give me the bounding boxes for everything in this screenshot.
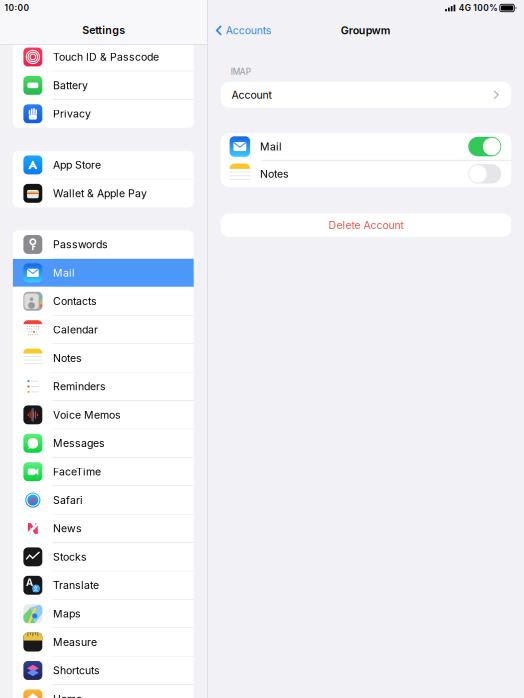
button[interactable]: Passwords: [13, 231, 194, 258]
button[interactable]: Wallet & Apple Pay: [13, 179, 194, 207]
button[interactable]: Notes enabled: [468, 164, 501, 184]
button[interactable]: Measure: [13, 628, 194, 656]
staticText: Wallet & Apple Pay: [53, 187, 147, 200]
staticText: Touch ID & Passcode: [53, 51, 159, 63]
staticText: Groupwm: [341, 24, 391, 37]
staticText: FaceTime: [53, 465, 101, 478]
button[interactable]: Accounts: [207, 19, 278, 42]
staticText: Delete Account: [328, 219, 403, 231]
button[interactable]: Contacts: [13, 287, 194, 315]
button[interactable]: FaceTime: [13, 458, 194, 486]
button[interactable]: Shortcuts: [13, 657, 194, 684]
staticText: Notes: [53, 352, 82, 364]
staticText: Mail: [260, 140, 282, 153]
staticText: App Store: [53, 159, 101, 171]
staticText: Privacy: [53, 107, 91, 120]
button[interactable]: Account: [221, 82, 511, 108]
staticText: Accounts: [226, 24, 272, 37]
staticText: Contacts: [53, 295, 97, 308]
staticText: Battery: [53, 79, 88, 92]
staticText: Maps: [53, 607, 81, 620]
staticText: Passwords: [53, 238, 108, 251]
staticText: Notes: [260, 167, 289, 180]
staticText: Translate: [53, 579, 99, 592]
staticText: Stocks: [53, 550, 87, 563]
button[interactable]: A: [13, 571, 194, 599]
staticText: Safari: [53, 494, 83, 506]
staticText: Measure: [53, 636, 97, 648]
staticText: Settings: [82, 24, 125, 36]
staticText: Reminders: [53, 380, 106, 393]
staticText: News: [53, 522, 82, 535]
button[interactable]: Mail: [13, 259, 194, 287]
staticText: Home: [53, 692, 82, 698]
staticText: A: [26, 576, 34, 589]
button[interactable]: Voice Memos: [13, 401, 194, 429]
staticText: Shortcuts: [53, 664, 100, 677]
button[interactable]: Home: [13, 685, 194, 698]
button[interactable]: Mail enabled: [468, 137, 501, 156]
staticText: Messages: [53, 437, 105, 450]
button[interactable]: Messages: [13, 429, 194, 457]
staticText: 10:00: [4, 3, 29, 13]
button[interactable]: Safari: [13, 486, 194, 514]
button[interactable]: Battery: [13, 71, 194, 99]
button[interactable]: Notes: [13, 344, 194, 372]
staticText: 文: [33, 584, 40, 593]
button[interactable]: Touch ID & Passcode: [13, 43, 194, 71]
staticText: 100%: [473, 3, 497, 13]
button[interactable]: Privacy: [13, 100, 194, 128]
button[interactable]: News: [13, 515, 194, 542]
button[interactable]: Maps: [13, 600, 194, 628]
button[interactable]: Calendar: [13, 316, 194, 344]
staticText: Account: [232, 88, 272, 101]
staticText: IMAP: [231, 67, 251, 77]
button[interactable]: Reminders: [13, 373, 194, 400]
staticText: Voice Memos: [53, 408, 121, 421]
button[interactable]: Delete Account: [221, 213, 511, 237]
staticText: 4G: [459, 3, 471, 13]
button[interactable]: App Store: [13, 151, 194, 179]
staticText: Calendar: [53, 323, 98, 336]
staticText: Mail: [53, 266, 75, 279]
button[interactable]: Stocks: [13, 543, 194, 571]
